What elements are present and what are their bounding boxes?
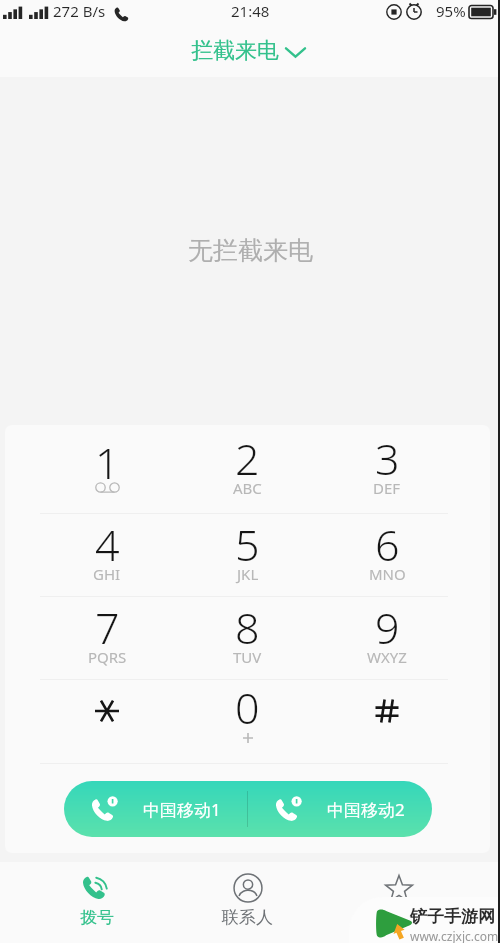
staticText: 收藏 — [382, 907, 416, 928]
staticText: 6 — [375, 515, 400, 574]
button[interactable]: 拨号 — [21, 862, 172, 943]
button[interactable]: 5 — [177, 514, 317, 596]
staticText: 2 — [235, 429, 260, 488]
button[interactable]: 3 — [317, 425, 457, 513]
button[interactable]: 联系人 — [172, 862, 323, 943]
button[interactable]: 8 — [177, 597, 317, 679]
staticText: 8 — [235, 598, 260, 657]
staticText: 1 — [95, 433, 120, 492]
staticText: www.czjxjc.com — [410, 928, 499, 943]
staticText: 0 — [235, 678, 260, 737]
staticText: ABC — [233, 478, 262, 498]
button[interactable]: 中国移动2 — [248, 781, 432, 837]
button[interactable]: 6 — [317, 514, 457, 596]
staticText: MNO — [369, 564, 406, 584]
staticText: 4 — [95, 515, 120, 574]
staticText: 272 B/s — [53, 1, 106, 21]
button[interactable] — [317, 680, 457, 763]
button[interactable]: 7 — [37, 597, 177, 679]
staticText: DEF — [373, 478, 401, 498]
button[interactable]: 中国移动1 — [64, 781, 247, 837]
staticText: 3 — [375, 429, 400, 488]
button[interactable]: 9 — [317, 597, 457, 679]
staticText: 5 — [235, 515, 260, 574]
staticText: TUV — [233, 647, 262, 667]
staticText: PQRS — [88, 647, 127, 667]
button[interactable]: 1 — [37, 425, 177, 513]
staticText: WXYZ — [367, 647, 407, 667]
staticText: 21:48 — [231, 1, 270, 21]
staticText: 9 — [375, 598, 400, 657]
button[interactable] — [37, 680, 177, 763]
staticText: 中国移动2 — [327, 798, 405, 821]
staticText: JKL — [237, 564, 259, 584]
button[interactable]: 收藏 — [323, 862, 474, 943]
staticText: 7 — [95, 598, 120, 657]
staticText: 铲子手游网 — [410, 906, 495, 927]
button[interactable]: 4 — [37, 514, 177, 596]
staticText: 联系人 — [222, 907, 273, 928]
button[interactable]: 2 — [177, 425, 317, 513]
staticText: 中国移动1 — [143, 798, 221, 821]
staticText: 拨号 — [80, 907, 114, 928]
staticText: GHI — [93, 564, 121, 584]
button[interactable]: 0 — [177, 680, 317, 763]
staticText: 无拦截来电 — [188, 235, 313, 266]
staticText: 95% — [436, 1, 466, 21]
staticText: 拦截来电 — [191, 37, 279, 65]
button[interactable]: 拦截来电 — [179, 31, 318, 71]
